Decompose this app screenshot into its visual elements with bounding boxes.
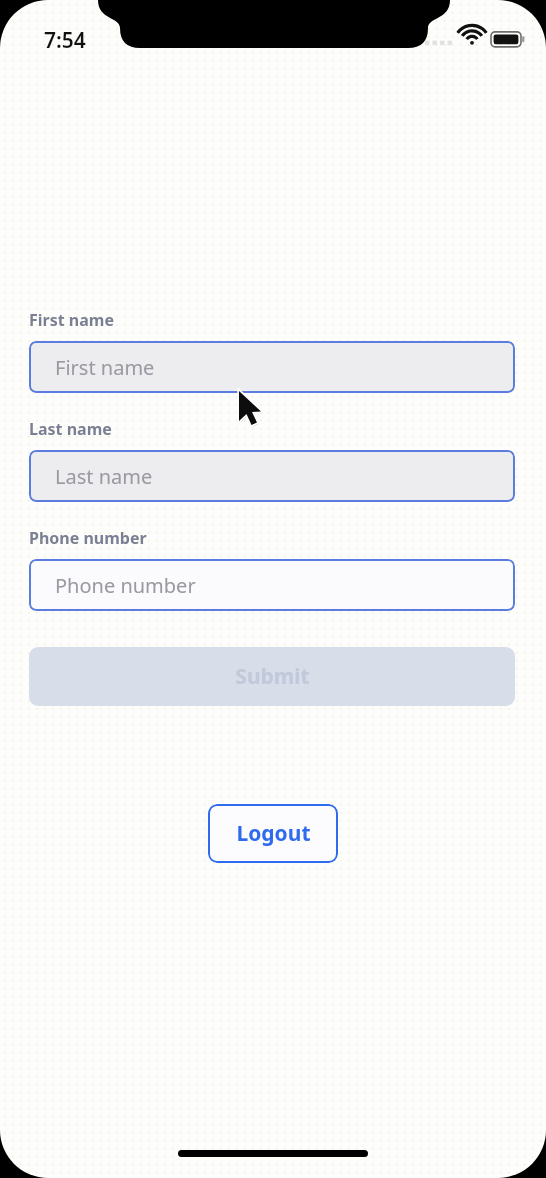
staticText: First name xyxy=(55,354,155,381)
staticText: 7:54 xyxy=(44,26,86,55)
button[interactable]: Submit xyxy=(29,647,515,706)
staticText: Logout xyxy=(236,819,311,848)
button[interactable]: Phone number xyxy=(29,559,515,611)
staticText: Last name xyxy=(55,463,153,490)
button[interactable]: First name xyxy=(29,341,515,393)
staticText: Submit xyxy=(235,662,310,691)
staticText: First name xyxy=(29,309,114,331)
button[interactable]: Last name xyxy=(29,450,515,502)
staticText: Phone number xyxy=(29,527,147,549)
staticText: Phone number xyxy=(55,572,196,599)
staticText: Last name xyxy=(29,418,112,440)
button[interactable]: Logout xyxy=(208,804,338,863)
